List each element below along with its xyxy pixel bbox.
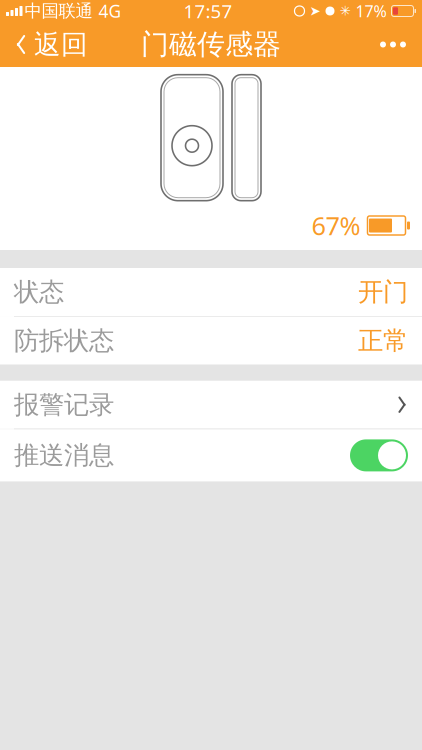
button[interactable]: 报警记录 <box>0 381 422 429</box>
staticText: ➤ <box>309 3 320 18</box>
staticText: 状态 <box>14 276 64 307</box>
staticText: 开门 <box>358 276 408 307</box>
staticText: 正常 <box>358 325 408 356</box>
staticText: 4G <box>98 0 121 22</box>
staticText: 返回 <box>34 28 88 61</box>
staticText: 门磁传感器 <box>141 27 281 62</box>
button[interactable]: 状态 <box>0 268 422 316</box>
staticText: ✳ <box>339 3 350 18</box>
staticText: 中国联通 <box>24 0 92 22</box>
button[interactable]: 防拆状态 <box>0 317 422 365</box>
button[interactable]: 返回 <box>0 22 102 67</box>
button[interactable]: More options <box>364 22 422 67</box>
staticText: 17:57 <box>183 0 232 23</box>
staticText: 67% <box>311 209 360 242</box>
staticText: 17% <box>355 0 386 22</box>
staticText: 报警记录 <box>14 389 114 420</box>
staticText: 推送消息 <box>14 440 114 471</box>
button[interactable]: 推送消息 <box>0 429 422 481</box>
staticText: 防拆状态 <box>14 325 114 356</box>
